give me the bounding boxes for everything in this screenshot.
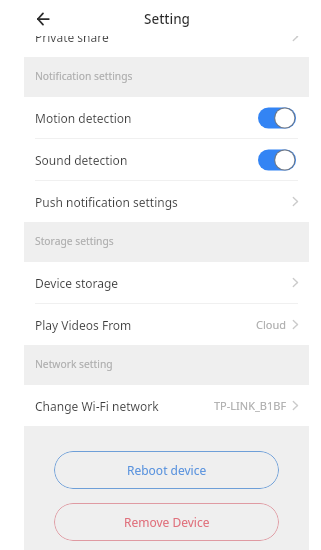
button[interactable]: Motion detection	[24, 97, 309, 138]
button[interactable]: Remove Device	[54, 503, 279, 541]
staticText: Network setting	[35, 357, 113, 371]
button[interactable]: Play Videos From	[24, 304, 309, 345]
staticText: Notification settings	[35, 69, 133, 83]
staticText: Sound detection	[35, 152, 128, 168]
staticText: Device storage	[35, 275, 119, 291]
button[interactable]: Private share	[24, 36, 309, 57]
staticText: Setting	[144, 10, 190, 28]
staticText: Play Videos From	[35, 317, 132, 333]
button[interactable]: Device storage	[24, 262, 309, 303]
staticText: Motion detection	[35, 110, 132, 126]
staticText: Change Wi-Fi network	[35, 398, 159, 414]
staticText: Push notification settings	[35, 194, 178, 210]
staticText: Cloud	[256, 317, 287, 332]
button[interactable]: Change Wi-Fi network	[24, 385, 309, 426]
staticText: Remove Device	[124, 514, 210, 530]
button[interactable]: Reboot device	[54, 451, 279, 489]
button[interactable]: Sound detection	[24, 139, 309, 180]
staticText: Reboot device	[127, 462, 207, 478]
button[interactable]: Push notification settings	[24, 181, 309, 222]
button[interactable]: Back	[29, 5, 57, 33]
staticText: TP-LINK_B1BF	[214, 398, 287, 413]
staticText: Storage settings	[35, 234, 114, 248]
staticText: Private share	[35, 36, 109, 45]
